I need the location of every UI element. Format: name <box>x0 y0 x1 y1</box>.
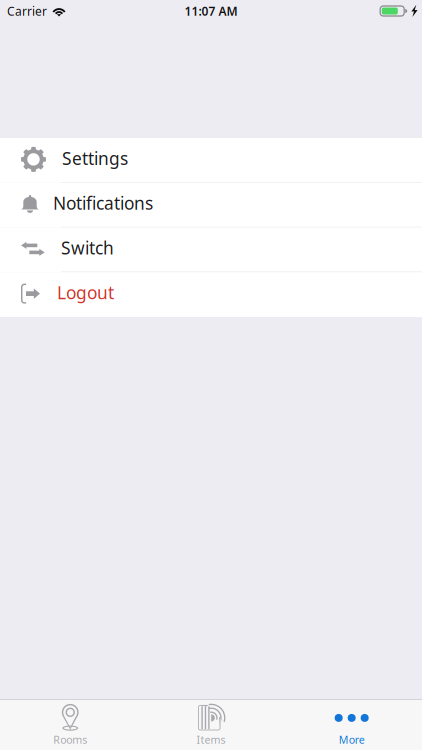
button[interactable]: More <box>281 700 422 750</box>
button[interactable]: Settings <box>0 138 422 183</box>
staticText: Logout <box>57 281 114 304</box>
staticText: More <box>339 732 365 747</box>
staticText: Notifications <box>53 192 153 215</box>
button[interactable]: Rooms <box>0 700 141 750</box>
staticText: Carrier <box>7 3 47 19</box>
staticText: Settings <box>62 147 128 170</box>
button[interactable]: Logout <box>0 272 422 317</box>
staticText: Switch <box>61 236 114 259</box>
staticText: Items <box>196 732 225 747</box>
button[interactable]: Switch <box>0 227 422 272</box>
button[interactable]: Items <box>141 700 281 750</box>
staticText: Rooms <box>53 732 87 747</box>
button[interactable]: Notifications <box>0 183 422 228</box>
staticText: 11:07 AM <box>184 3 237 19</box>
